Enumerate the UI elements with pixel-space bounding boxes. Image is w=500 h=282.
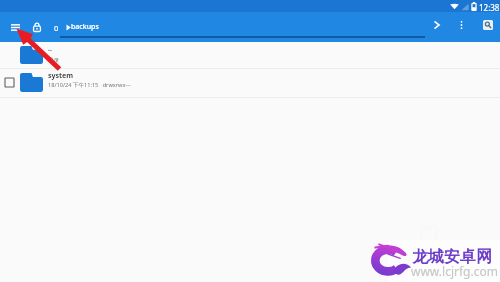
- staticText: 目录: [48, 57, 60, 64]
- staticText: www.lcjrfg.com: [411, 263, 498, 279]
- button[interactable]: system: [0, 69, 500, 97]
- staticText: 18/10/24 下午11:15 drwxrwx---: [48, 81, 131, 89]
- button[interactable]: Open navigation drawer: [5, 17, 25, 37]
- button[interactable]: Toggle root access: [27, 16, 47, 38]
- staticText: system: [48, 71, 74, 81]
- staticText: 12:38: [479, 2, 500, 13]
- staticText: 龙城安卓网: [412, 247, 492, 267]
- staticText: backups: [71, 22, 99, 32]
- button[interactable]: Search: [478, 15, 497, 35]
- staticText: 0: [54, 23, 59, 33]
- button[interactable]: More options: [451, 15, 471, 35]
- button[interactable]: ..: [0, 42, 500, 68]
- staticText: ..: [48, 44, 52, 54]
- button[interactable]: Forward: [427, 15, 447, 35]
